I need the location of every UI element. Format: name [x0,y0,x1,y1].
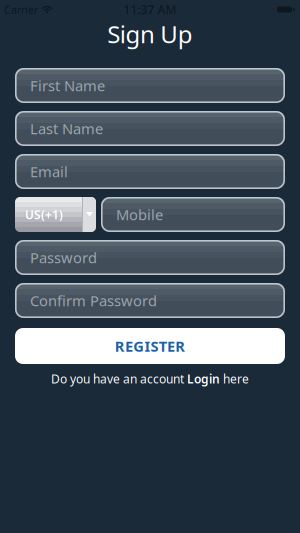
button[interactable]: Do you have an account [51,371,249,387]
button[interactable]: Last Name [15,111,285,146]
staticText: Confirm Password [30,291,157,310]
staticText: Do you have an account [51,371,187,387]
staticText: Email [30,162,68,181]
staticText: REGISTER [115,336,185,356]
button[interactable]: REGISTER [15,328,285,364]
button[interactable]: Email [15,154,285,189]
button[interactable]: Password [15,240,285,275]
staticText: First Name [30,76,105,95]
staticText: here [220,371,249,387]
staticText: US(+1) [25,206,63,222]
staticText: Carrier [4,2,38,17]
button[interactable]: First Name [15,68,285,103]
staticText: Last Name [30,119,103,138]
staticText: 11:37 AM [123,1,176,17]
button[interactable]: Country code US(+1) [15,197,96,232]
button[interactable]: Confirm Password [15,283,285,318]
staticText: Sign Up [107,18,193,50]
staticText: Login [187,371,220,387]
staticText: Password [30,248,97,267]
staticText: Mobile [116,205,163,224]
button[interactable]: Mobile [101,197,285,232]
